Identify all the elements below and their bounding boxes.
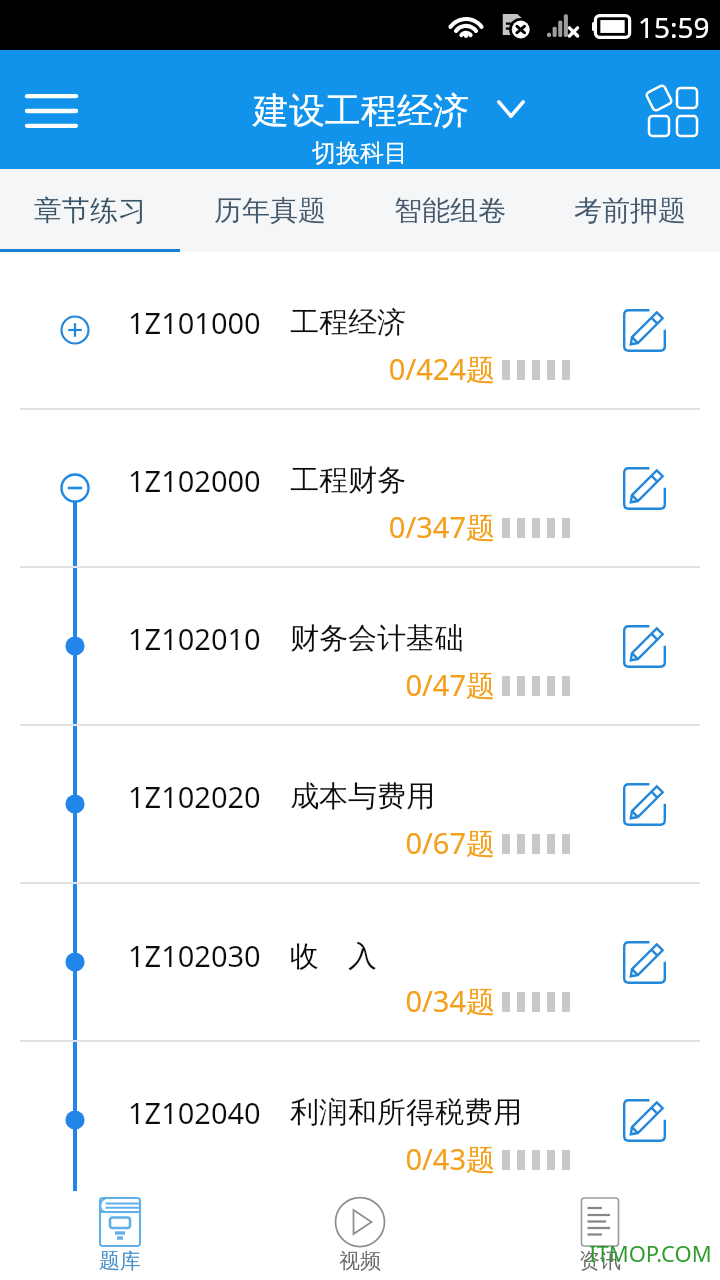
staticText: 15:59: [638, 8, 710, 46]
button[interactable]: 1Z102020: [0, 726, 720, 884]
button[interactable]: 1Z101000: [0, 252, 720, 410]
staticText: 章节练习: [34, 193, 146, 228]
staticText: 成本与费用: [290, 778, 435, 815]
staticText: 1Z102040: [128, 1093, 261, 1132]
button[interactable]: Edit 利润和所得税费用: [612, 1088, 676, 1152]
staticText: 1Z102000: [128, 461, 261, 500]
button[interactable]: 智能组卷: [360, 169, 540, 252]
button[interactable]: 1Z102030: [0, 884, 720, 1042]
button[interactable]: Edit 收 入: [612, 930, 676, 994]
staticText: 0/43题: [295, 1139, 495, 1179]
button[interactable]: 考前押题: [540, 169, 720, 252]
button[interactable]: Edit 工程经济: [612, 298, 676, 362]
staticText: 考前押题: [574, 193, 686, 228]
staticText: 1Z102030: [128, 936, 261, 975]
staticText: 0/47题: [295, 665, 495, 705]
button[interactable]: 1Z102040: [0, 1042, 720, 1191]
button[interactable]: 建设工程经济: [240, 82, 540, 148]
staticText: 切换科目: [312, 138, 408, 168]
staticText: 财务会计基础: [290, 620, 464, 657]
button[interactable]: All subjects: [629, 68, 713, 152]
button[interactable]: Edit 成本与费用: [612, 772, 676, 836]
button[interactable]: Edit 工程财务: [612, 456, 676, 520]
button[interactable]: 章节练习: [0, 169, 180, 252]
button[interactable]: 1Z102010: [0, 568, 720, 726]
staticText: 历年真题: [214, 193, 326, 228]
staticText: 0/347题: [295, 507, 495, 547]
staticText: 智能组卷: [394, 193, 506, 228]
button[interactable]: 题库: [0, 1191, 240, 1280]
button[interactable]: 1Z102000: [0, 410, 720, 568]
staticText: 1Z101000: [128, 303, 261, 342]
staticText: 0/424题: [295, 349, 495, 389]
button[interactable]: 资讯: [480, 1191, 720, 1280]
staticText: 1Z102010: [128, 619, 261, 658]
button[interactable]: 视频: [240, 1191, 480, 1280]
button[interactable]: 历年真题: [180, 169, 360, 252]
staticText: 利润和所得税费用: [290, 1094, 522, 1131]
staticText: 0/34题: [295, 981, 495, 1021]
staticText: 工程财务: [290, 462, 406, 499]
staticText: 题库: [99, 1248, 141, 1274]
staticText: 资讯: [579, 1248, 621, 1274]
staticText: 建设工程经济: [253, 88, 469, 133]
button[interactable]: Edit 财务会计基础: [612, 614, 676, 678]
staticText: 收 入: [290, 935, 377, 975]
button[interactable]: Open navigation menu: [4, 71, 98, 151]
staticText: 1Z102020: [128, 777, 261, 816]
staticText: 视频: [339, 1248, 381, 1274]
staticText: ITMOP.COM: [589, 1238, 712, 1268]
staticText: 工程经济: [290, 304, 406, 341]
staticText: 0/67题: [295, 823, 495, 863]
